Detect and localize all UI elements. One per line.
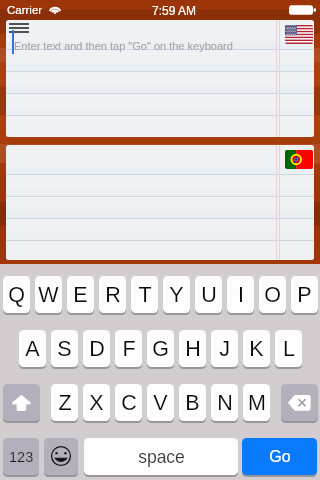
button[interactable]: K bbox=[243, 330, 270, 367]
staticText: O bbox=[264, 283, 281, 307]
button[interactable]: S bbox=[51, 330, 78, 367]
button[interactable]: W bbox=[35, 276, 62, 313]
staticText: 7:59 AM bbox=[152, 4, 197, 17]
button[interactable]: F bbox=[115, 330, 142, 367]
button[interactable]: Emoji bbox=[44, 438, 78, 475]
staticText: D bbox=[89, 337, 105, 361]
button[interactable]: Numbers bbox=[3, 438, 39, 475]
staticText: K bbox=[249, 337, 264, 361]
button[interactable]: M bbox=[243, 384, 270, 421]
staticText: U bbox=[201, 283, 217, 307]
button[interactable]: I bbox=[227, 276, 254, 313]
button[interactable]: R bbox=[99, 276, 126, 313]
staticText: T bbox=[138, 283, 152, 307]
button[interactable]: Backspace bbox=[281, 384, 318, 421]
staticText: V bbox=[153, 391, 168, 415]
staticText: I bbox=[238, 283, 244, 307]
staticText: 123 bbox=[9, 449, 34, 465]
button[interactable]: Portuguese bbox=[6, 145, 314, 260]
staticText: C bbox=[121, 391, 137, 415]
button[interactable]: D bbox=[83, 330, 110, 367]
button[interactable]: B bbox=[179, 384, 206, 421]
staticText: S bbox=[57, 337, 72, 361]
staticText: Z bbox=[58, 391, 72, 415]
staticText: R bbox=[105, 283, 121, 307]
staticText: J bbox=[219, 337, 230, 361]
button[interactable]: Menu bbox=[6, 20, 314, 137]
staticText: W bbox=[38, 283, 59, 307]
button[interactable]: X bbox=[83, 384, 110, 421]
staticText: E bbox=[73, 283, 88, 307]
staticText: A bbox=[25, 337, 40, 361]
staticText: L bbox=[283, 337, 295, 361]
button[interactable]: H bbox=[179, 330, 206, 367]
button[interactable]: A bbox=[19, 330, 46, 367]
staticText: Q bbox=[8, 283, 25, 307]
button[interactable]: J bbox=[211, 330, 238, 367]
staticText: Go bbox=[269, 448, 291, 466]
button[interactable]: L bbox=[275, 330, 302, 367]
button[interactable]: space bbox=[84, 438, 238, 475]
staticText: Y bbox=[169, 283, 184, 307]
staticText: Carrier bbox=[7, 4, 43, 17]
button[interactable]: Q bbox=[3, 276, 30, 313]
button[interactable]: C bbox=[115, 384, 142, 421]
button[interactable]: V bbox=[147, 384, 174, 421]
staticText: space bbox=[138, 447, 185, 467]
staticText: H bbox=[185, 337, 201, 361]
button[interactable]: G bbox=[147, 330, 174, 367]
staticText: P bbox=[297, 283, 312, 307]
button[interactable]: Y bbox=[163, 276, 190, 313]
staticText: F bbox=[122, 337, 136, 361]
button[interactable]: T bbox=[131, 276, 158, 313]
button[interactable]: O bbox=[259, 276, 286, 313]
staticText: X bbox=[89, 391, 104, 415]
button[interactable]: U bbox=[195, 276, 222, 313]
staticText: N bbox=[217, 391, 233, 415]
staticText: B bbox=[185, 391, 200, 415]
button[interactable]: Menu bbox=[9, 23, 29, 35]
button[interactable]: P bbox=[291, 276, 318, 313]
button[interactable]: Shift bbox=[3, 384, 40, 421]
button[interactable]: Z bbox=[51, 384, 78, 421]
button[interactable]: Portuguese bbox=[285, 150, 313, 169]
button[interactable]: English bbox=[285, 25, 313, 44]
staticText: G bbox=[152, 337, 169, 361]
button[interactable]: Go bbox=[242, 438, 317, 475]
staticText: M bbox=[248, 391, 266, 415]
button[interactable]: N bbox=[211, 384, 238, 421]
staticText: Enter text and then tap "Go" on the keyb… bbox=[14, 40, 233, 52]
button[interactable]: E bbox=[67, 276, 94, 313]
